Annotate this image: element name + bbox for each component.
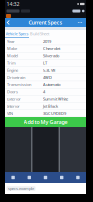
staticText: Drivetrain: [7, 75, 25, 80]
staticText: Transmission: [7, 82, 31, 87]
staticText: Build Sheet: [30, 31, 49, 36]
staticText: Year: [7, 39, 15, 44]
button[interactable]: More options: [75, 18, 84, 27]
staticText: specs.example: [8, 186, 34, 191]
staticText: 4WD: [43, 75, 52, 80]
staticText: Add to My Garage: [23, 118, 67, 126]
staticText: Engine: [7, 67, 18, 73]
staticText: VIN: [7, 111, 13, 116]
button[interactable]: Add to My Garage: [5, 117, 86, 127]
staticText: 2019: [43, 39, 51, 44]
button[interactable]: Share: [37, 172, 54, 183]
staticText: Model: [7, 53, 18, 58]
staticText: 14:32: [6, 0, 19, 8]
staticText: Automatic: [43, 82, 61, 87]
staticText: Silverado: [43, 53, 59, 58]
staticText: 3GCUYDED9: [43, 111, 66, 116]
staticText: Vehicle Specs: [5, 31, 28, 36]
button[interactable]: Tabs: [70, 172, 86, 183]
staticText: Doors: [7, 89, 18, 94]
staticText: Exterior: [7, 96, 21, 102]
button[interactable]: Back: [5, 172, 21, 183]
staticText: 4: [43, 89, 45, 94]
staticText: Jet Black: [43, 103, 58, 109]
staticText: Chevrolet: [43, 46, 60, 51]
staticText: Summit White: [43, 96, 68, 102]
staticText: Current Specs: [28, 19, 62, 26]
staticText: 5.3L V8: [43, 67, 55, 73]
button[interactable]: specs.example: [6, 186, 35, 191]
staticText: Interior: [7, 103, 20, 109]
button[interactable]: Back: [6, 18, 15, 27]
button[interactable]: Vehicle Specs: [5, 30, 29, 38]
staticText: LT: [43, 60, 47, 66]
button[interactable]: Build Sheet: [29, 30, 50, 38]
staticText: Trim: [7, 60, 16, 66]
button[interactable]: Forward: [21, 172, 37, 183]
staticText: Make: [7, 46, 17, 51]
button[interactable]: Bookmarks: [54, 172, 70, 183]
